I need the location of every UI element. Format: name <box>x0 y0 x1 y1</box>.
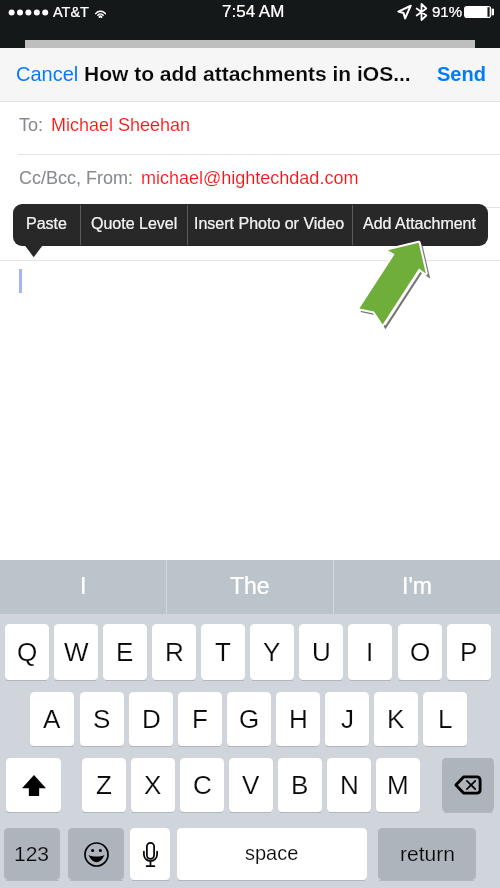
staticText: D <box>142 704 161 733</box>
button[interactable]: Cc/Bcc, From: <box>0 155 500 207</box>
staticText: Insert Photo or Video <box>194 215 345 233</box>
button[interactable]: N <box>327 758 371 812</box>
button[interactable]: Send <box>429 48 500 101</box>
button[interactable]: Delete <box>442 758 494 812</box>
staticText: Q <box>17 637 38 666</box>
staticText: S <box>93 704 111 733</box>
staticText: Y <box>263 637 281 666</box>
staticText: C <box>193 770 212 799</box>
button[interactable]: Emoji <box>68 828 124 880</box>
button[interactable]: R <box>152 624 196 680</box>
button[interactable]: Shift <box>6 758 61 812</box>
button[interactable]: P <box>447 624 491 680</box>
staticText: 123 <box>14 842 50 865</box>
staticText: J <box>341 704 354 733</box>
button[interactable]: I'm <box>334 560 500 614</box>
button[interactable]: return <box>378 828 476 880</box>
button[interactable]: L <box>423 692 467 746</box>
button[interactable]: I <box>0 560 166 614</box>
button[interactable]: D <box>129 692 173 746</box>
button[interactable]: Quote Level <box>80 204 188 246</box>
button[interactable]: T <box>201 624 245 680</box>
button[interactable]: Add Attachment <box>352 204 487 246</box>
staticText: return <box>400 842 455 865</box>
staticText: Z <box>96 770 112 799</box>
staticText: F <box>192 704 208 733</box>
staticText: G <box>239 704 260 733</box>
staticText: AT&T <box>53 4 89 20</box>
button[interactable]: S <box>80 692 124 746</box>
staticText: Cc/Bcc, From: <box>19 168 139 188</box>
staticText: H <box>289 704 308 733</box>
button[interactable]: H <box>276 692 320 746</box>
staticText: Michael Sheehan <box>51 115 191 135</box>
button[interactable]: K <box>374 692 418 746</box>
button[interactable]: 123 <box>4 828 60 880</box>
staticText: 91% <box>432 3 463 20</box>
staticText: R <box>165 637 184 666</box>
staticText: T <box>215 637 231 666</box>
button[interactable]: Cancel <box>0 48 87 101</box>
staticText: Cancel <box>16 63 79 85</box>
staticText: O <box>410 637 431 666</box>
button[interactable]: Paste <box>13 204 80 246</box>
button[interactable]: E <box>103 624 147 680</box>
button[interactable]: I <box>348 624 392 680</box>
staticText: U <box>312 637 331 666</box>
button[interactable]: M <box>376 758 420 812</box>
staticText: michael@hightechdad.com <box>141 168 359 188</box>
staticText: I <box>366 637 374 666</box>
staticText: How to add attachments in iOS... <box>84 62 411 85</box>
button[interactable]: U <box>299 624 343 680</box>
button[interactable]: W <box>54 624 98 680</box>
staticText: V <box>242 770 260 799</box>
staticText: L <box>438 704 453 733</box>
button[interactable]: space <box>177 828 367 880</box>
staticText: E <box>116 637 134 666</box>
staticText: A <box>43 704 61 733</box>
button[interactable]: Insert Photo or Video <box>187 204 352 246</box>
staticText: Paste <box>26 215 67 233</box>
staticText: I <box>80 573 87 599</box>
staticText: K <box>387 704 405 733</box>
staticText: To: <box>19 115 49 135</box>
staticText: X <box>144 770 162 799</box>
button[interactable]: To: <box>0 102 500 154</box>
staticText: Send <box>437 63 486 85</box>
staticText: M <box>387 770 409 799</box>
staticText: Add Attachment <box>363 215 476 233</box>
staticText: The <box>230 573 270 599</box>
button[interactable]: B <box>278 758 322 812</box>
button[interactable]: C <box>180 758 224 812</box>
staticText: W <box>64 637 89 666</box>
button[interactable]: G <box>227 692 271 746</box>
staticText: 7:54 AM <box>222 2 285 21</box>
staticText: N <box>340 770 359 799</box>
button[interactable]: X <box>131 758 175 812</box>
staticText: B <box>291 770 309 799</box>
staticText: Quote Level <box>91 215 178 233</box>
button[interactable]: The <box>167 560 333 614</box>
button[interactable]: Z <box>82 758 126 812</box>
button[interactable]: O <box>398 624 442 680</box>
button[interactable]: F <box>178 692 222 746</box>
staticText: P <box>460 637 478 666</box>
button[interactable]: Dictate <box>130 828 170 880</box>
button[interactable]: V <box>229 758 273 812</box>
button[interactable]: A <box>30 692 74 746</box>
button[interactable]: Q <box>5 624 49 680</box>
button[interactable]: J <box>325 692 369 746</box>
staticText: I'm <box>402 573 432 599</box>
button[interactable]: Y <box>250 624 294 680</box>
staticText: space <box>245 842 299 864</box>
